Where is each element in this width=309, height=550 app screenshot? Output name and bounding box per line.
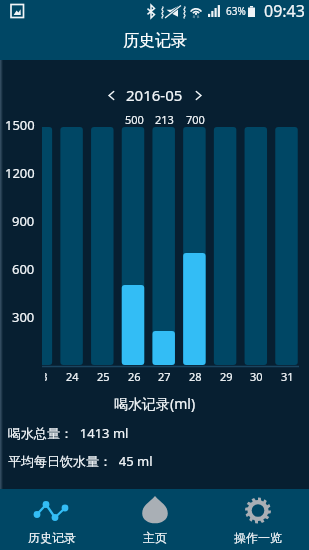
button[interactable]: 主页 (103, 489, 206, 550)
staticText: 1500 (5, 116, 35, 134)
staticText: 25 (97, 369, 110, 384)
staticText: 500 (125, 112, 144, 127)
staticText: 300 (12, 308, 35, 326)
staticText: 700 (186, 112, 205, 127)
staticText: 平均每日饮水量： 45 ml (8, 452, 153, 470)
staticText: 213 (155, 112, 174, 127)
button[interactable]: 操作一览 (206, 489, 309, 550)
button[interactable]: 历史记录 (0, 22, 309, 60)
staticText: 2016-05 (126, 85, 183, 105)
staticText: 29 (220, 369, 233, 384)
staticText: 喝水记录(ml) (114, 394, 196, 413)
staticText: 历史记录 (28, 530, 76, 545)
staticText: 900 (12, 212, 35, 230)
staticText: 30 (250, 369, 263, 384)
staticText: 喝水总量： 1413 ml (8, 424, 129, 442)
staticText: 历史记录 (123, 31, 187, 51)
staticText: 09:43 (264, 0, 305, 22)
button[interactable]: Previous month (101, 85, 121, 105)
button[interactable]: Next month (188, 85, 208, 105)
staticText: 63% (226, 4, 246, 18)
staticText: 操作一览 (234, 530, 282, 545)
staticText: 主页 (143, 530, 167, 545)
staticText: 1200 (5, 164, 35, 182)
button[interactable]: 历史记录 (0, 489, 103, 550)
staticText: 23 (45, 369, 48, 384)
staticText: 600 (12, 260, 35, 278)
staticText: 27 (158, 369, 171, 384)
staticText: 31 (281, 369, 294, 384)
staticText: 24 (66, 369, 79, 384)
staticText: 28 (189, 369, 202, 384)
staticText: 26 (128, 369, 141, 384)
